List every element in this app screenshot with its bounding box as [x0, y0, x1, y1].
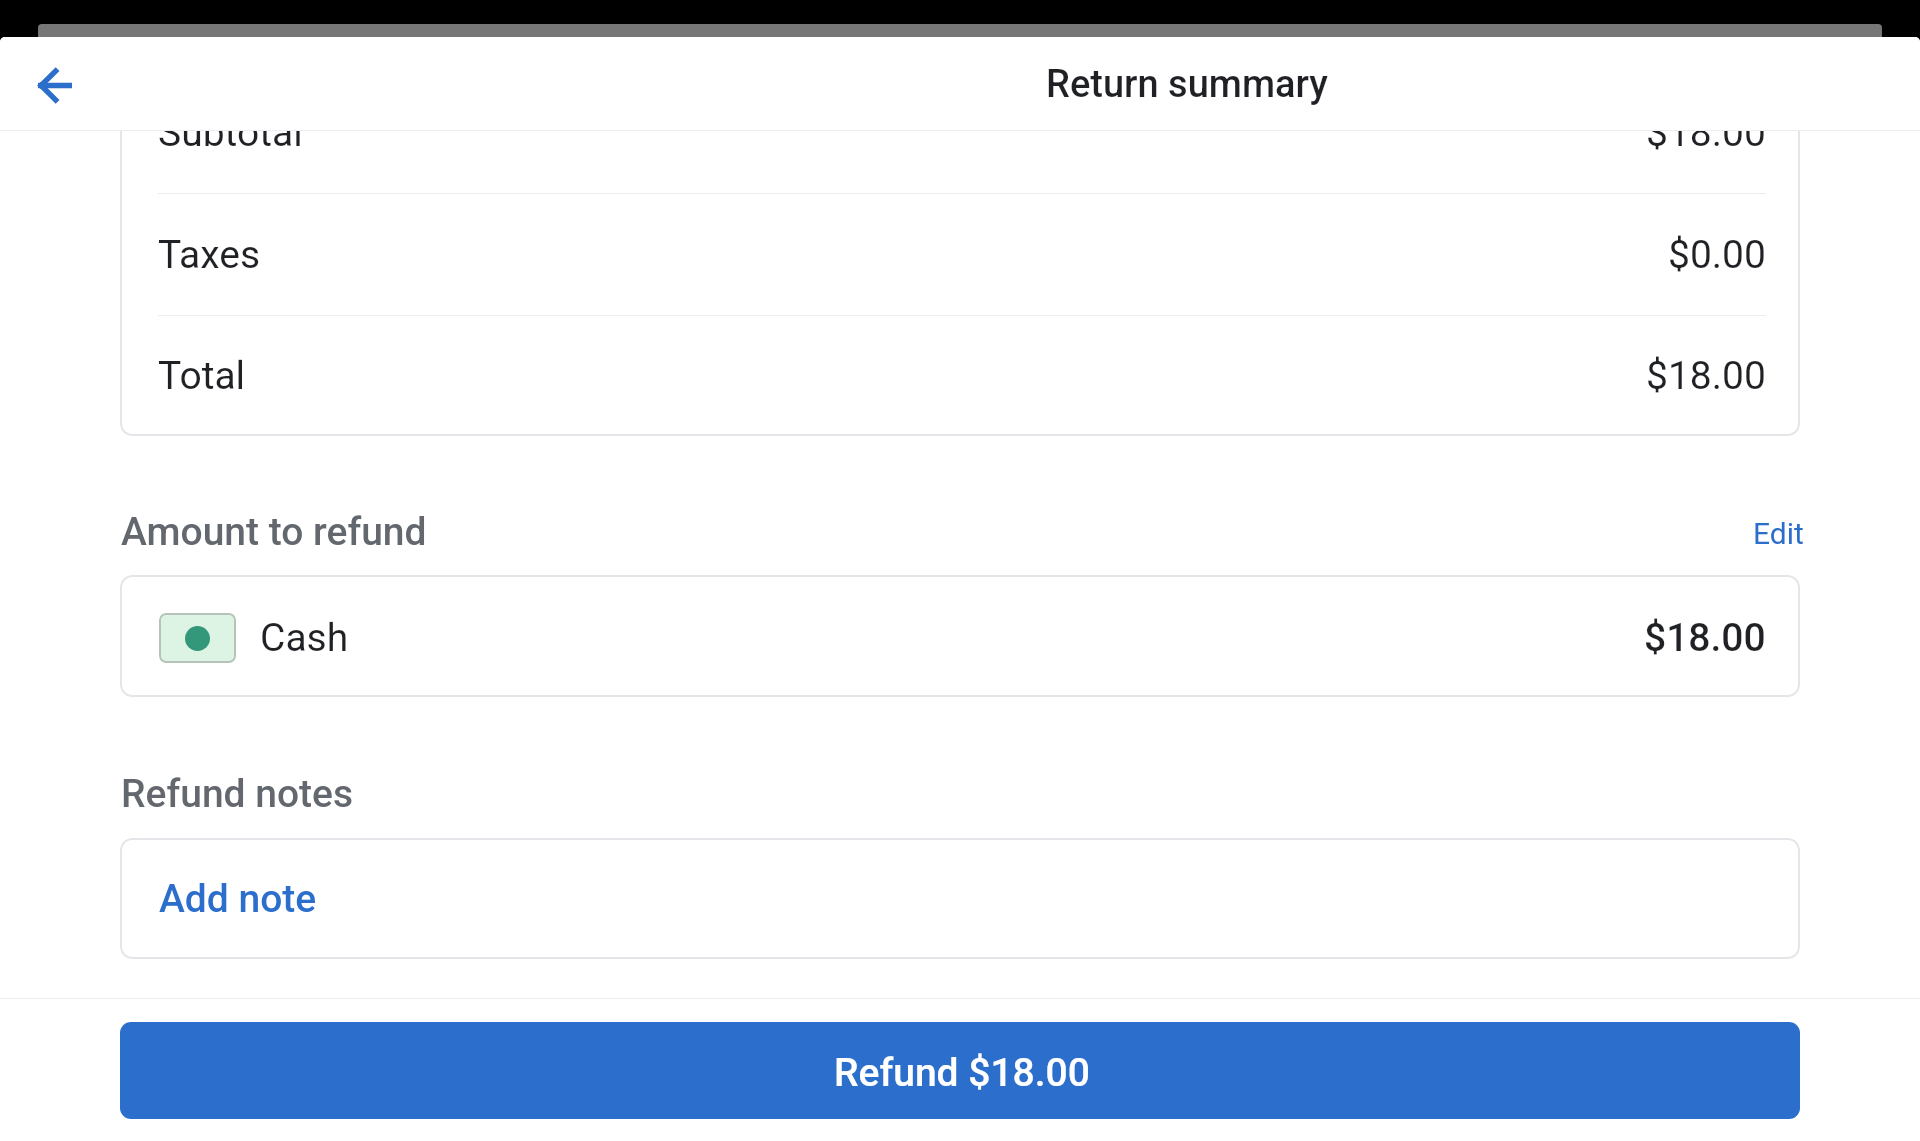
staticText: $0.00 — [1668, 232, 1766, 278]
staticText: Refund $18.00 — [834, 1050, 1090, 1096]
button[interactable]: Back — [21, 51, 89, 119]
staticText: Refund notes — [121, 771, 354, 817]
button[interactable]: Edit — [1753, 510, 1804, 556]
staticText: $18.00 — [1646, 353, 1766, 399]
staticText: Amount to refund — [121, 509, 427, 555]
staticText: Edit — [1753, 516, 1804, 551]
staticText: Total — [158, 353, 246, 399]
staticText: Cash — [260, 615, 349, 661]
staticText: Return summary — [1046, 62, 1328, 107]
staticText: Add note — [159, 876, 317, 922]
staticText: Taxes — [158, 232, 261, 278]
staticText: Subtotal — [158, 110, 303, 156]
button[interactable]: Refund $18.00 — [120, 1022, 1800, 1119]
button[interactable]: Cash — [120, 575, 1800, 697]
button[interactable]: Add note — [120, 838, 1800, 959]
staticText: $18.00 — [1644, 615, 1766, 661]
staticText: $18.00 — [1646, 110, 1766, 156]
